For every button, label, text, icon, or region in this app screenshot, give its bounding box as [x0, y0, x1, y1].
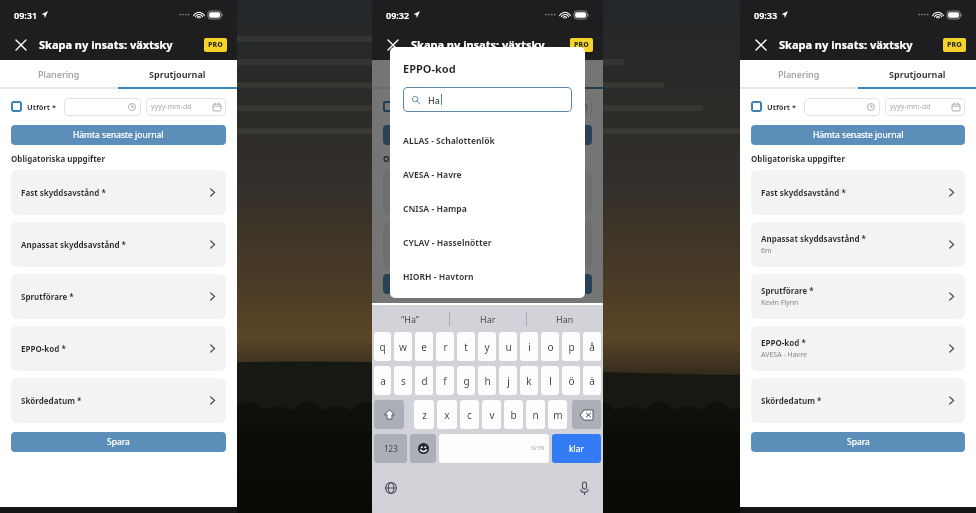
button[interactable]: Stäng — [384, 36, 402, 54]
button[interactable]: Planering — [740, 60, 858, 87]
button[interactable]: SV EN — [439, 434, 549, 463]
button[interactable]: l — [541, 366, 559, 395]
button[interactable]: yyyy-mm-dd — [885, 98, 965, 116]
button[interactable]: Fast skyddsavstånd * — [751, 170, 965, 215]
button[interactable]: Spara — [11, 432, 226, 452]
button[interactable]: p — [562, 332, 580, 361]
staticText: o — [547, 340, 554, 354]
button[interactable]: ö — [562, 366, 580, 395]
button[interactable]: k — [520, 366, 538, 395]
button[interactable]: Sprutjournal — [118, 60, 237, 87]
staticText: ä — [589, 374, 595, 388]
button[interactable]: c — [460, 400, 479, 429]
button[interactable]: Sprutförare * — [11, 274, 226, 319]
button[interactable]: PRO — [947, 40, 962, 50]
button[interactable]: ALLAS - Schalottenlök — [403, 124, 572, 158]
button[interactable]: Anpassat skyddsavstånd * — [751, 222, 965, 267]
button[interactable]: AVESA - Havre — [403, 158, 572, 192]
button[interactable]: å — [583, 332, 601, 361]
button[interactable]: Skördedatum * — [751, 378, 965, 423]
button[interactable]: Utfört — [751, 101, 762, 112]
button[interactable]: Anpassat skyddsavstånd * — [11, 222, 226, 267]
button[interactable]: ä — [583, 366, 601, 395]
button[interactable] — [436, 98, 510, 116]
button[interactable]: j — [499, 366, 517, 395]
staticText: x — [444, 408, 450, 422]
button[interactable]: Diktering — [576, 480, 592, 496]
button[interactable]: Ha — [403, 87, 572, 112]
button[interactable]: klar — [552, 434, 601, 463]
button[interactable]: EPPO-kod * — [11, 326, 226, 371]
staticText: Sprutjournal — [889, 68, 946, 80]
button[interactable]: Sprutförare * — [751, 274, 965, 319]
button[interactable]: o — [541, 332, 559, 361]
button[interactable]: Radera — [572, 400, 601, 429]
button[interactable]: m — [548, 400, 567, 429]
staticText: Hämta senaste journal — [442, 129, 533, 141]
button[interactable]: Sprutjournal — [487, 60, 603, 87]
button[interactable]: EPPO-kod * — [751, 326, 965, 371]
button[interactable]: yyyy-mm-dd — [515, 98, 592, 116]
button[interactable]: w — [394, 332, 412, 361]
button[interactable] — [64, 98, 141, 116]
button[interactable] — [804, 98, 880, 116]
staticText: EPPO-kod * — [761, 337, 806, 348]
button[interactable]: CYLAV - Hasselnötter — [403, 226, 572, 260]
staticText: Planering — [778, 68, 820, 80]
button[interactable]: Fast skyddsavstånd * — [11, 170, 226, 215]
button[interactable]: y — [478, 332, 496, 361]
button[interactable]: Skift — [374, 400, 404, 429]
button[interactable]: q — [374, 332, 391, 361]
button[interactable]: g — [457, 366, 475, 395]
staticText: Utfört * — [399, 102, 429, 112]
button[interactable]: d — [415, 366, 433, 395]
button[interactable]: Planering — [372, 60, 487, 87]
button[interactable]: HIORH - Havtorn — [403, 260, 572, 294]
button[interactable]: Sprutjournal — [858, 60, 976, 87]
button[interactable]: h — [478, 366, 496, 395]
button[interactable]: Stäng — [752, 36, 770, 54]
button[interactable]: Utfört — [11, 101, 22, 112]
staticText: 123 — [384, 443, 398, 454]
button[interactable]: u — [499, 332, 517, 361]
button[interactable]: Emoji — [410, 434, 436, 463]
button[interactable]: e — [415, 332, 433, 361]
button[interactable]: t — [457, 332, 475, 361]
button[interactable]: Spara — [751, 432, 965, 452]
staticText: Skördedatum * — [761, 395, 822, 406]
button[interactable]: a — [374, 366, 391, 395]
button[interactable] — [383, 274, 592, 294]
button[interactable]: CNISA - Hampa — [403, 192, 572, 226]
button[interactable]: b — [504, 400, 523, 429]
button[interactable]: PRO — [574, 40, 589, 50]
button[interactable]: i — [520, 332, 538, 361]
button[interactable]: z — [414, 400, 434, 429]
staticText: Skapa ny insats: växtsky — [779, 37, 913, 52]
button[interactable]: Skördedatum * — [11, 378, 226, 423]
button[interactable]: r — [436, 332, 454, 361]
button[interactable]: Hämta senaste journal — [11, 125, 226, 145]
staticText: r — [443, 340, 448, 354]
button[interactable]: yyyy-mm-dd — [146, 98, 226, 116]
staticText: Utfört * — [767, 102, 797, 112]
button[interactable]: Har — [450, 305, 526, 332]
button[interactable]: x — [437, 400, 457, 429]
button[interactable]: Fast skyddsavstånd * — [383, 170, 592, 215]
button[interactable]: Han — [527, 305, 603, 332]
button[interactable]: n — [526, 400, 545, 429]
button[interactable]: Planering — [0, 60, 118, 87]
button[interactable]: Anpassat skyddsavstånd * — [383, 222, 592, 267]
button[interactable]: v — [482, 400, 501, 429]
button[interactable]: 123 — [374, 434, 407, 463]
button[interactable]: Stäng — [12, 36, 30, 54]
button[interactable]: Hämta senaste journal — [751, 125, 965, 145]
button[interactable]: Utfört — [383, 101, 394, 112]
button[interactable]: s — [394, 366, 412, 395]
button[interactable]: PRO — [208, 40, 223, 50]
button[interactable]: Hämta senaste journal — [383, 125, 592, 145]
staticText: ö — [568, 374, 575, 388]
staticText: Sprutförare * — [761, 285, 814, 296]
button[interactable]: f — [436, 366, 454, 395]
button[interactable]: “Ha” — [372, 305, 449, 332]
button[interactable]: Byt språk — [383, 480, 399, 496]
